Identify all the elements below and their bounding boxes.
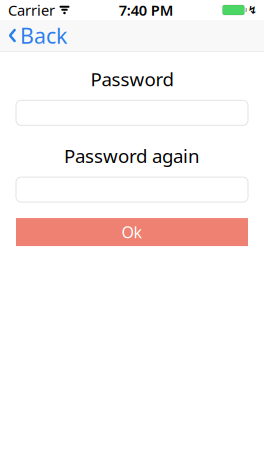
staticText: Back bbox=[20, 21, 67, 50]
staticText: Carrier bbox=[8, 0, 55, 20]
button[interactable]: Ok bbox=[16, 218, 248, 246]
staticText: 7:40 PM bbox=[119, 0, 174, 20]
staticText: ↯ bbox=[248, 4, 257, 16]
staticText: Ok bbox=[121, 221, 142, 243]
staticText: Password bbox=[90, 66, 173, 91]
staticText: Password again bbox=[64, 143, 200, 168]
button[interactable]: Back bbox=[0, 20, 77, 51]
